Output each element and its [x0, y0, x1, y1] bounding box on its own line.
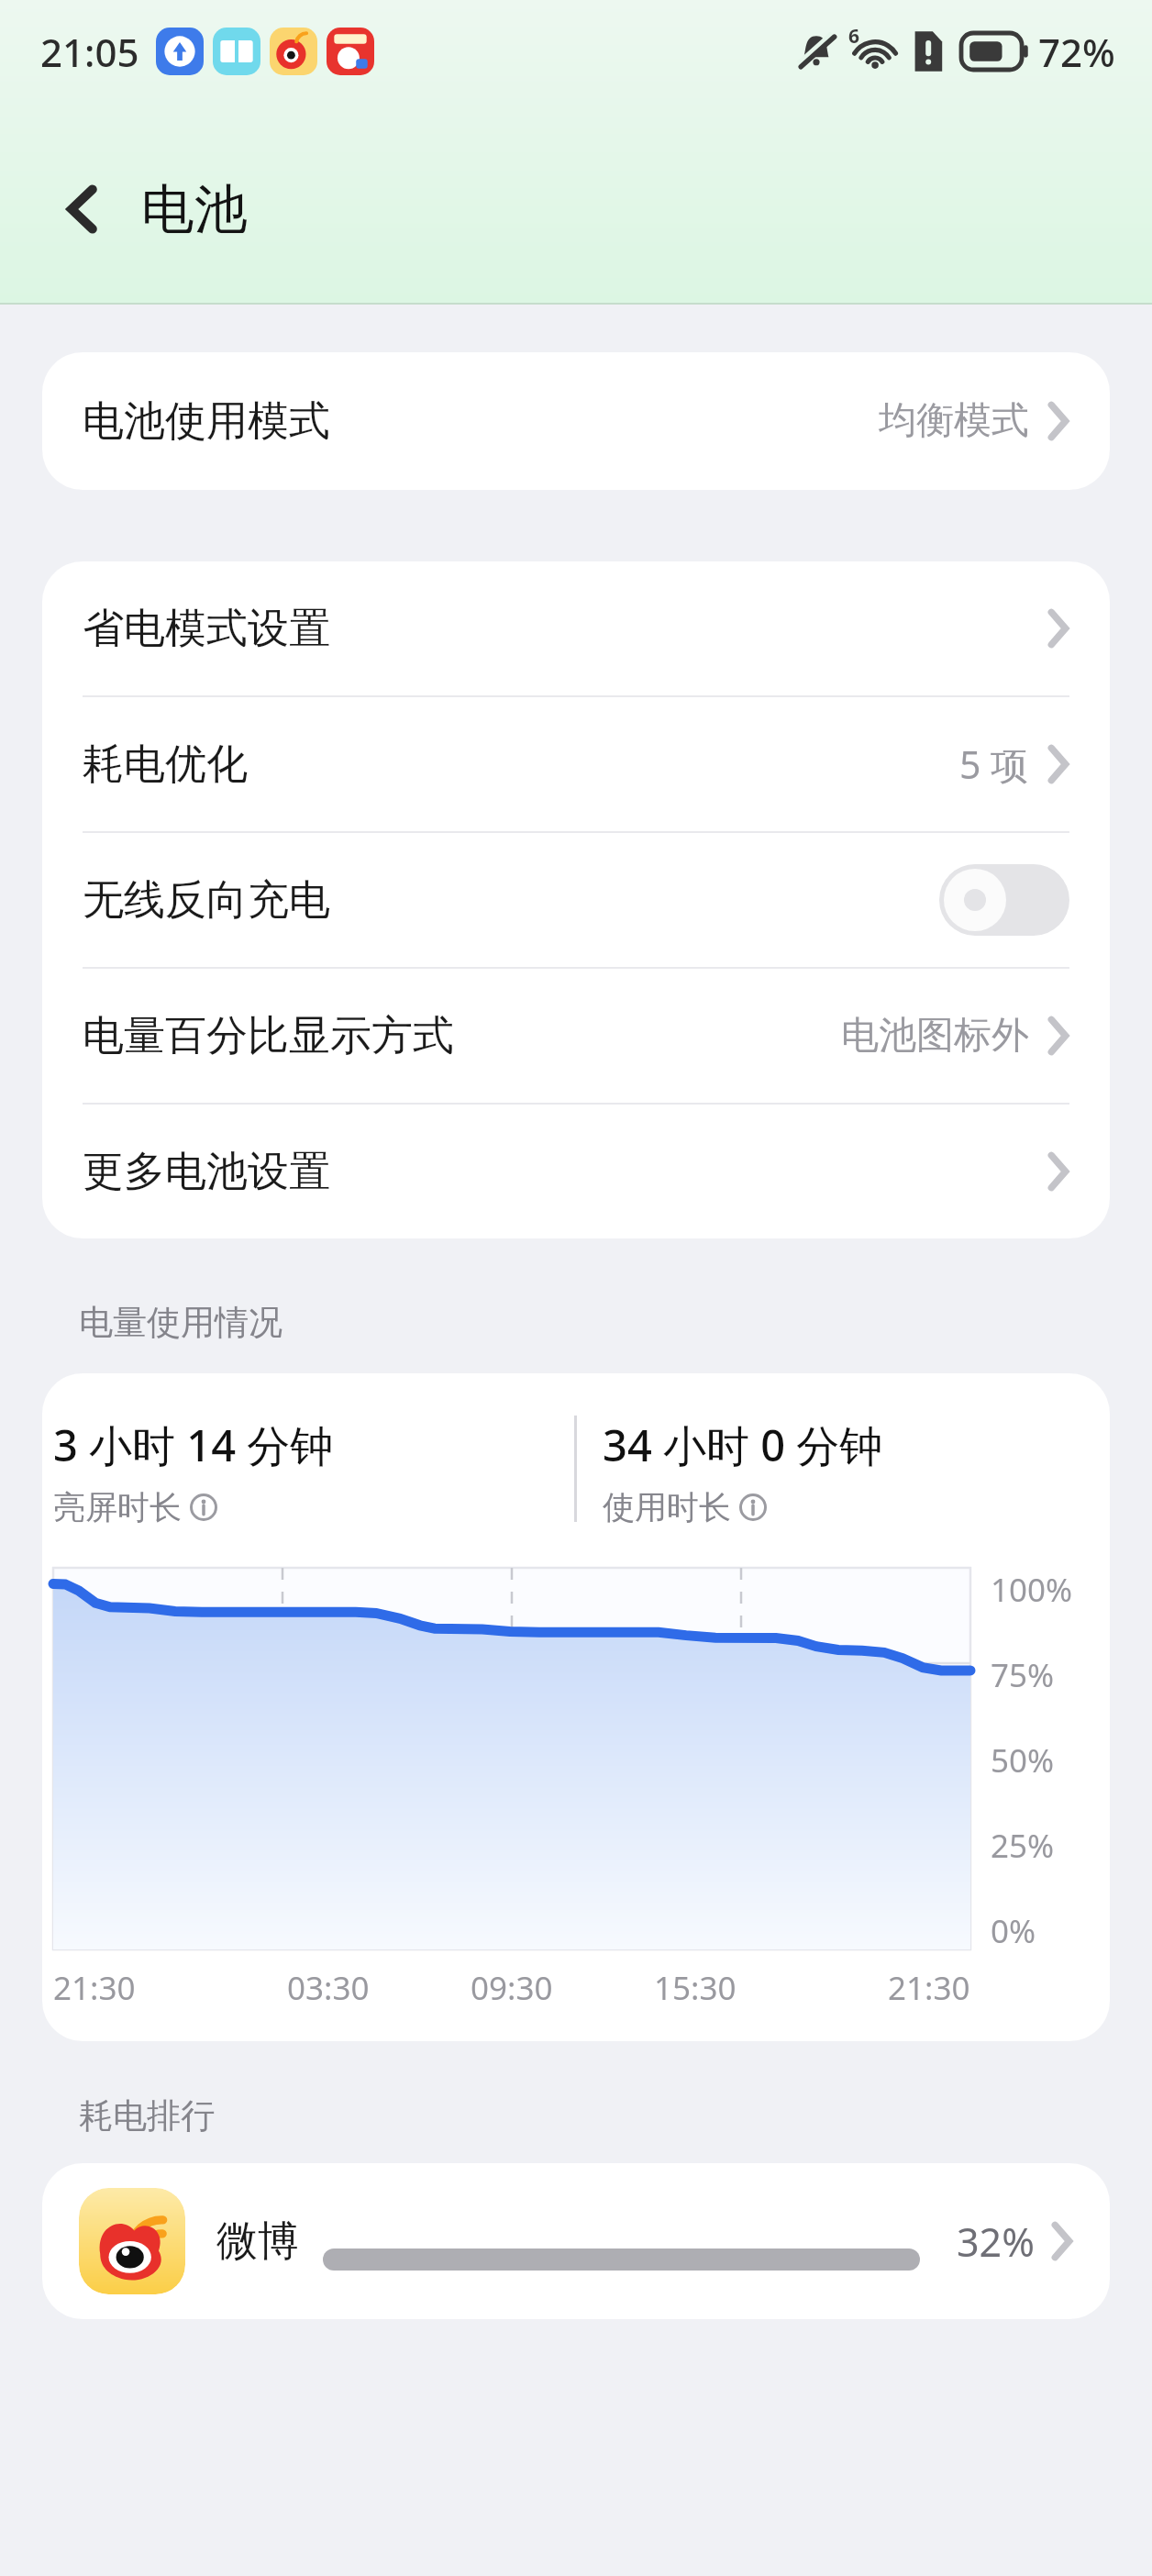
- button[interactable]: 微博: [42, 2163, 1110, 2319]
- staticText: 电池图标外: [841, 1012, 1029, 1060]
- staticText: 电池使用模式: [83, 395, 330, 448]
- staticText: 电量使用情况: [79, 1301, 282, 1344]
- staticText: 15:30: [654, 1966, 737, 2010]
- staticText: 耗电优化: [83, 738, 248, 791]
- staticText: 21:05: [40, 26, 139, 78]
- staticText: 6: [848, 23, 860, 50]
- staticText: 更多电池设置: [83, 1146, 330, 1198]
- staticText: 72%: [1038, 26, 1115, 78]
- staticText: 50%: [991, 1738, 1055, 1779]
- staticText: 21:30: [53, 1966, 136, 2010]
- button[interactable]: 无线反向充电: [42, 833, 1110, 967]
- staticText: 34 小时 0 分钟: [603, 1416, 883, 1474]
- staticText: 微博: [216, 2215, 299, 2268]
- staticText: 3 小时 14 分钟: [53, 1416, 334, 1474]
- button[interactable]: 电池使用模式: [42, 352, 1110, 490]
- staticText: 25%: [991, 1824, 1055, 1864]
- staticText: 100%: [991, 1568, 1073, 1608]
- staticText: 电量百分比显示方式: [83, 1010, 454, 1062]
- staticText: 亮屏时长: [53, 1487, 182, 1527]
- staticText: 75%: [991, 1653, 1055, 1693]
- staticText: 09:30: [471, 1966, 553, 2010]
- staticText: 均衡模式: [879, 397, 1029, 445]
- button[interactable]: Back: [39, 165, 127, 253]
- staticText: 03:30: [287, 1966, 370, 2010]
- other: Silent mode: [794, 29, 838, 73]
- button[interactable]: 更多电池设置: [42, 1105, 1110, 1238]
- staticText: 耗电排行: [79, 2094, 215, 2137]
- staticText: 使用时长: [603, 1487, 731, 1527]
- other: SIM alert: [910, 28, 947, 75]
- staticText: 电池: [141, 176, 248, 243]
- staticText: 省电模式设置: [83, 603, 330, 655]
- button[interactable]: 耗电优化: [42, 697, 1110, 831]
- staticText: 32%: [957, 2215, 1035, 2269]
- button[interactable]: 省电模式设置: [42, 561, 1110, 695]
- staticText: 无线反向充电: [83, 874, 330, 927]
- staticText: 21:30: [888, 1966, 970, 2010]
- staticText: 5 项: [959, 738, 1029, 790]
- staticText: 0%: [991, 1909, 1036, 1949]
- button[interactable]: 电量百分比显示方式: [42, 969, 1110, 1103]
- other: Wi-Fi: [849, 27, 899, 76]
